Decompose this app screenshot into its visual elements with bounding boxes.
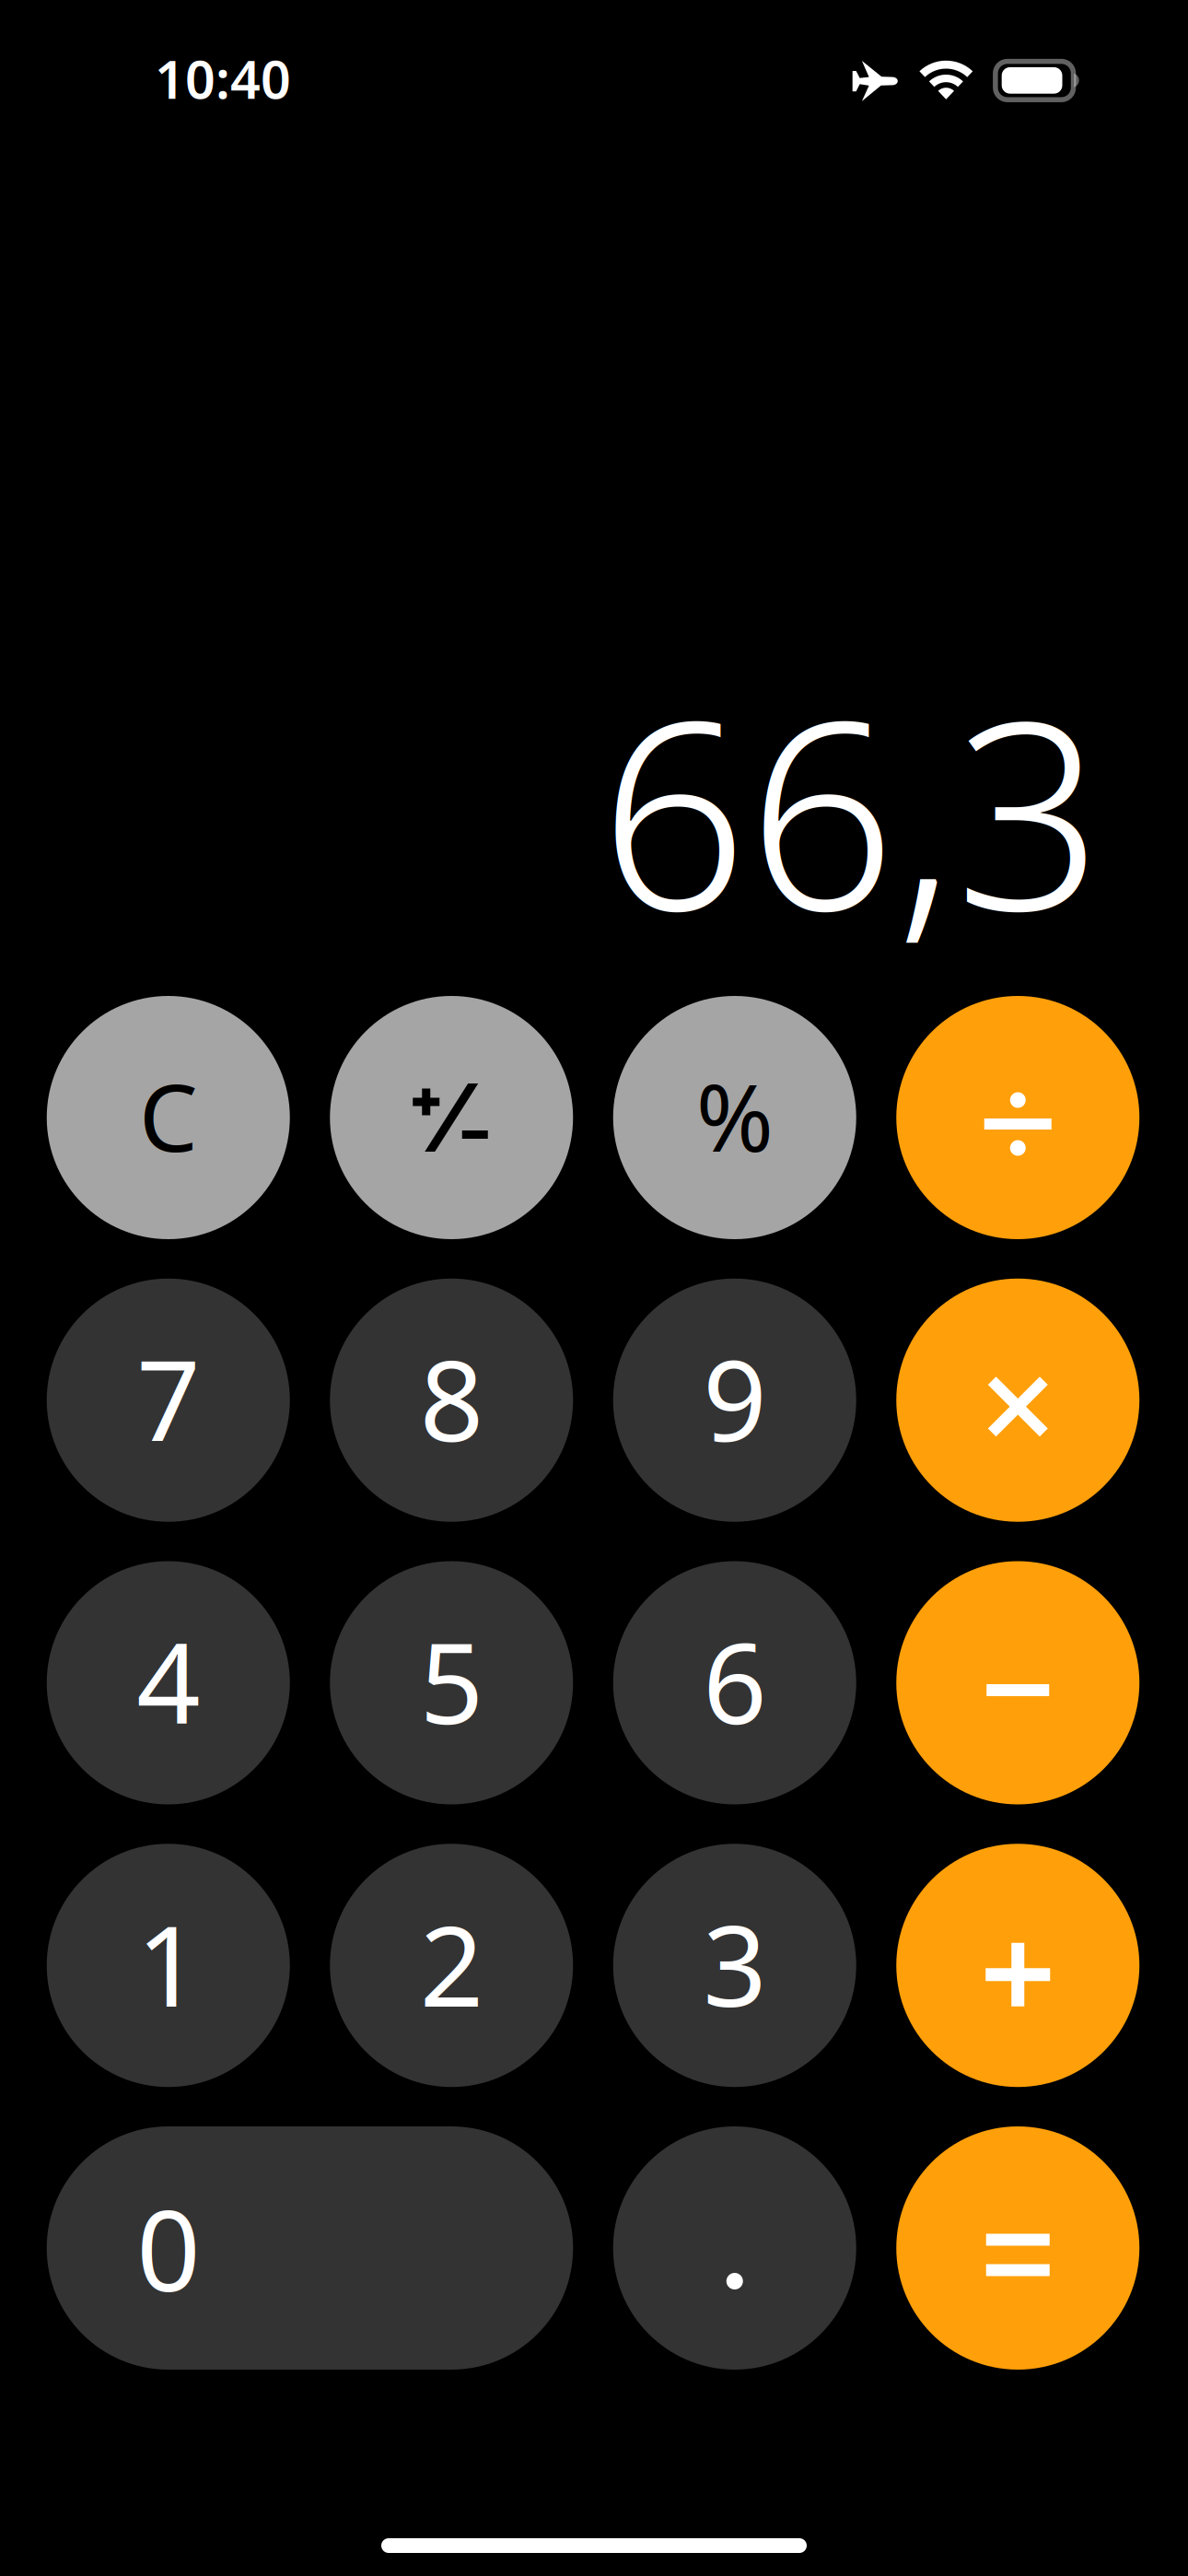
staticText: 7 [136, 1324, 200, 1472]
button[interactable]: 9 [613, 1279, 856, 1522]
button[interactable]: Minus [896, 1561, 1139, 1804]
staticText: 10:40 [155, 43, 291, 113]
button[interactable]: Equals [896, 2126, 1139, 2370]
button[interactable]: C [47, 996, 290, 1239]
button[interactable]: Toggle sign [330, 996, 573, 1239]
button[interactable]: Decimal point [613, 2126, 856, 2370]
button[interactable]: Divide [896, 996, 1139, 1239]
button[interactable]: 4 [47, 1561, 290, 1804]
button[interactable]: % [613, 996, 856, 1239]
button[interactable]: 3 [613, 1844, 856, 2087]
staticText: 0 [136, 2174, 200, 2322]
button[interactable]: Multiply [896, 1279, 1139, 1522]
button[interactable]: 0 [47, 2126, 573, 2370]
button[interactable]: 5 [330, 1561, 573, 1804]
button[interactable]: 1 [47, 1844, 290, 2087]
staticText: 4 [136, 1606, 200, 1755]
staticText: 9 [703, 1324, 766, 1472]
staticText: 2 [420, 1889, 483, 2037]
staticText: % [696, 1053, 773, 1177]
button[interactable]: 2 [330, 1844, 573, 2087]
button[interactable]: 7 [47, 1279, 290, 1522]
staticText: C [139, 1053, 198, 1177]
button[interactable]: 6 [613, 1561, 856, 1804]
staticText: 3 [703, 1889, 766, 2037]
button[interactable]: Plus [896, 1844, 1139, 2087]
staticText: 5 [420, 1606, 483, 1755]
staticText: 8 [420, 1324, 483, 1472]
button[interactable]: 8 [330, 1279, 573, 1522]
staticText: 6 [703, 1606, 766, 1755]
staticText: 1 [136, 1889, 200, 2037]
staticText: 66,3 [600, 637, 1103, 981]
